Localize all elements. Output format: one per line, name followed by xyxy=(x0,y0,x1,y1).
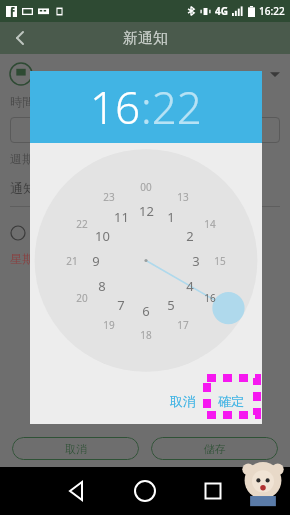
button[interactable]: 16 xyxy=(30,71,262,143)
button[interactable]: 確定 xyxy=(208,387,254,415)
staticText: 儲存 xyxy=(204,442,226,456)
staticText: 通知 xyxy=(10,180,36,196)
staticText: 13 xyxy=(177,190,189,204)
button[interactable]: Recents xyxy=(198,476,228,506)
button[interactable]: Back xyxy=(8,26,32,50)
staticText: 12 xyxy=(139,202,154,220)
staticText: 15 xyxy=(214,254,226,268)
staticText: 10 xyxy=(95,227,110,245)
staticText: 20 xyxy=(76,291,88,305)
staticText: 確定 xyxy=(218,393,244,409)
staticText: :22 xyxy=(141,77,202,137)
staticText: 19 xyxy=(103,318,115,332)
staticText: 取消 xyxy=(65,442,87,456)
staticText: 11 xyxy=(114,208,129,226)
staticText: 21 xyxy=(66,254,78,268)
staticText: 4 xyxy=(186,277,194,295)
button[interactable]: Back xyxy=(62,476,92,506)
staticText: 5 xyxy=(167,296,175,314)
staticText: 2 xyxy=(186,227,194,245)
staticText: 22 xyxy=(76,217,88,231)
button[interactable]: Home xyxy=(130,476,160,506)
staticText: 1 xyxy=(167,208,175,226)
button[interactable]: 儲存 xyxy=(151,437,278,460)
staticText: 3 xyxy=(192,252,200,270)
staticText: 新通知 xyxy=(123,29,168,48)
button[interactable]: 取消 xyxy=(162,387,204,415)
staticText: 4G xyxy=(215,4,228,18)
staticText: 16 xyxy=(90,77,141,137)
staticText: 星期 xyxy=(10,251,34,266)
staticText: 8 xyxy=(98,277,106,295)
staticText: 14 xyxy=(204,217,216,231)
staticText: 時間 xyxy=(10,94,34,109)
staticText: 17 xyxy=(177,318,189,332)
staticText: 9 xyxy=(92,252,100,270)
staticText: 23 xyxy=(103,190,115,204)
staticText: 16:22 xyxy=(259,4,285,18)
staticText: 取消 xyxy=(170,393,196,409)
staticText: 16 xyxy=(204,291,216,305)
staticText: 7 xyxy=(117,296,125,314)
staticText: 18 xyxy=(140,328,152,342)
staticText: 6 xyxy=(142,302,150,320)
staticText: 週期 xyxy=(10,151,34,166)
staticText: 00 xyxy=(140,180,152,194)
button[interactable]: 取消 xyxy=(12,437,139,460)
